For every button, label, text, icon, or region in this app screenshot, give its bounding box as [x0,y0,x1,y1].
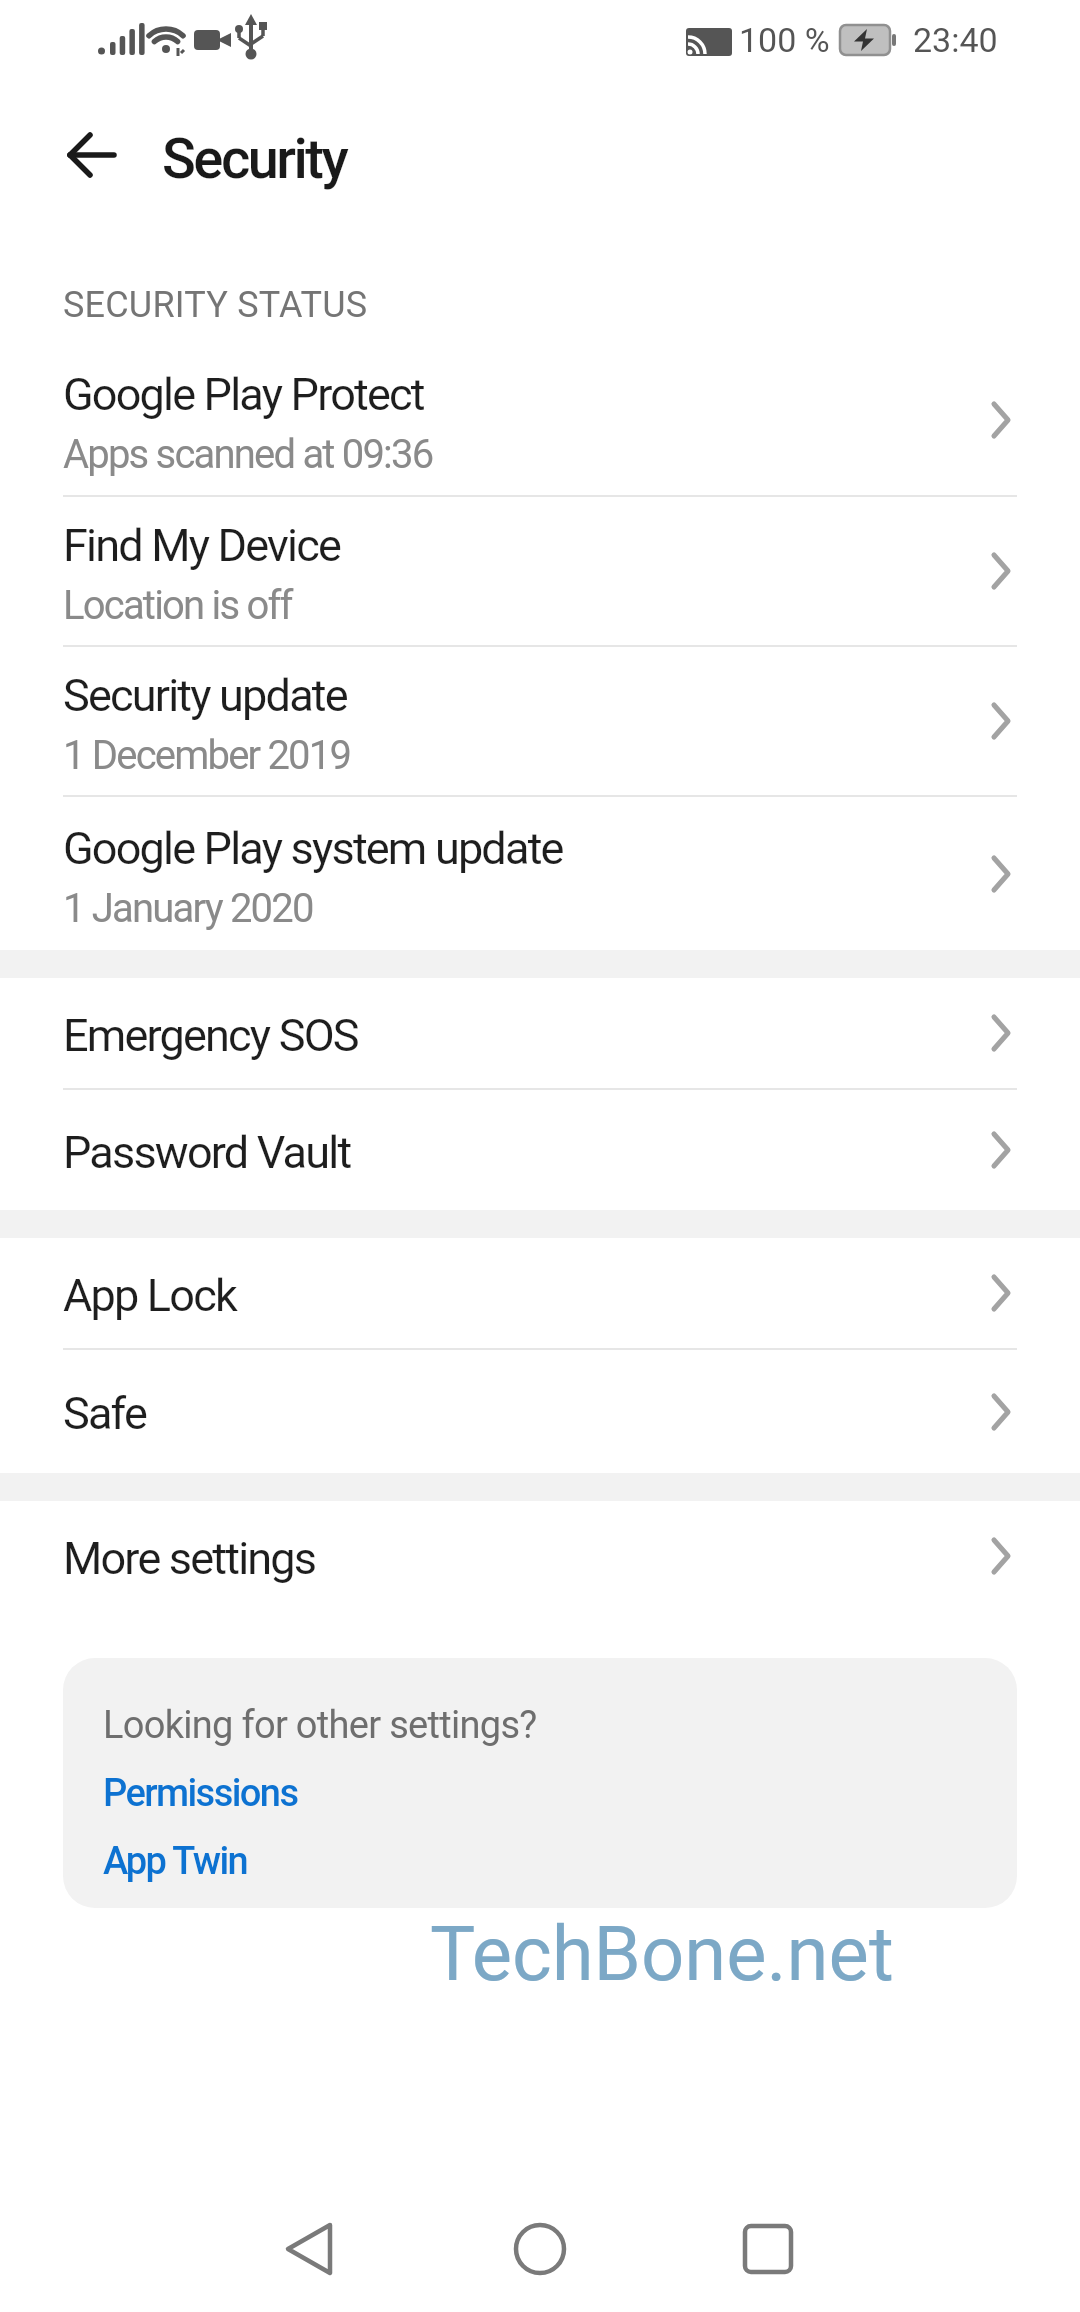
staticText: 1 December 2019 [63,732,351,779]
button[interactable] [60,123,124,187]
button[interactable]: Find My Device [0,497,1080,645]
button[interactable]: App Twin [103,1839,248,1884]
staticText: Google Play system update [63,822,563,875]
staticText: Find My Device [63,519,341,572]
staticText: 23:40 [913,20,998,60]
staticText: TechBone.net [430,1909,894,1998]
staticText: Apps scanned at 09:36 [63,431,433,478]
staticText: Location is off [63,582,292,629]
button[interactable]: Security update [0,647,1080,795]
button[interactable]: More settings [0,1501,1080,1611]
button[interactable]: App Lock [0,1238,1080,1348]
staticText: Emergency SOS [63,1009,358,1062]
button[interactable]: Emergency SOS [0,978,1080,1088]
staticText: More settings [63,1532,316,1585]
staticText: Password Vault [63,1126,351,1179]
button[interactable]: Google Play Protect [0,345,1080,495]
staticText: Safe [63,1387,146,1440]
staticText: Security [162,126,347,192]
button[interactable]: Permissions [103,1771,298,1816]
staticText: App Lock [63,1269,236,1322]
staticText: SECURITY STATUS [63,284,368,326]
button[interactable]: Google Play system update [0,797,1080,950]
staticText: Security update [63,669,347,722]
staticText: Google Play Protect [63,368,424,421]
staticText: 100 % [739,20,830,60]
staticText: 1 January 2020 [63,885,313,932]
button[interactable]: Password Vault [0,1090,1080,1210]
button[interactable]: Safe [0,1350,1080,1473]
staticText: Looking for other settings? [103,1703,537,1748]
